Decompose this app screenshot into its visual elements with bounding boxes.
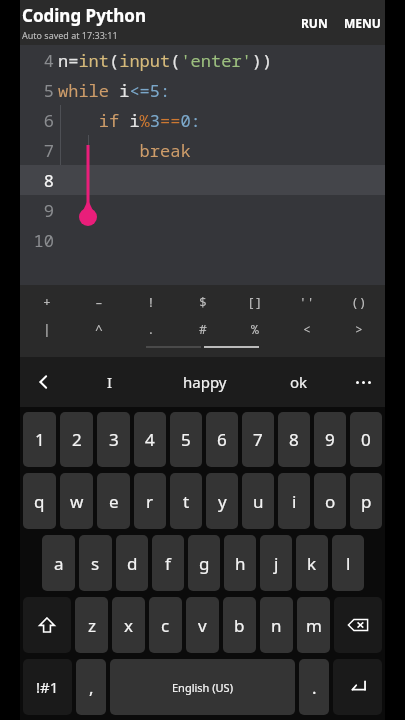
staticText: i (292, 490, 297, 513)
staticText: v (198, 614, 207, 637)
button[interactable]: z (75, 597, 108, 653)
staticText: !#1 (36, 677, 59, 697)
button[interactable]: 2 (60, 412, 93, 467)
button[interactable]: u (242, 473, 274, 529)
button[interactable]: $ (177, 288, 229, 315)
button[interactable]: v (186, 597, 219, 653)
button[interactable]: n (260, 597, 293, 653)
button[interactable]: 6 (20, 105, 385, 135)
staticText: 7 (253, 428, 263, 451)
button[interactable]: MENU (340, 9, 385, 37)
button[interactable]: Back (20, 357, 68, 407)
button[interactable]: 7 (20, 135, 385, 165)
button[interactable]: y (206, 473, 238, 529)
button[interactable]: # (177, 315, 229, 342)
staticText: 9 (20, 199, 54, 222)
button[interactable]: w (60, 473, 93, 529)
button[interactable]: e (97, 473, 130, 529)
button[interactable]: p (350, 473, 382, 529)
button[interactable]: s (79, 535, 112, 591)
staticText: I (107, 372, 113, 392)
button[interactable]: – (73, 288, 125, 315)
button[interactable]: ^ (73, 315, 125, 342)
button[interactable]: English (US) (110, 659, 295, 715)
staticText: 10 (20, 229, 54, 252)
button[interactable]: 9 (20, 195, 385, 225)
button[interactable]: [] (229, 288, 281, 315)
staticText: ! (147, 293, 155, 311)
staticText: h (235, 552, 246, 575)
button[interactable]: Backspace (334, 597, 382, 653)
staticText: y (218, 490, 227, 513)
staticText: English (US) (172, 680, 233, 695)
button[interactable]: '' (281, 288, 333, 315)
staticText: z (88, 614, 96, 637)
staticText: m (306, 614, 322, 637)
button[interactable]: f (152, 535, 184, 591)
button[interactable]: x (112, 597, 145, 653)
button[interactable]: c (149, 597, 182, 653)
button[interactable]: Enter (333, 659, 382, 715)
staticText: t (183, 490, 190, 513)
button[interactable]: o (314, 473, 346, 529)
button[interactable]: 8 (278, 412, 310, 467)
staticText: n=int(input('enter')) (58, 49, 273, 72)
button[interactable]: g (188, 535, 220, 591)
button[interactable]: | (20, 315, 73, 342)
button[interactable]: 3 (97, 412, 130, 467)
button[interactable]: 4 (20, 45, 385, 75)
button[interactable]: () (333, 288, 385, 315)
staticText: g (199, 552, 210, 575)
button[interactable]: k (296, 535, 328, 591)
staticText: o (325, 490, 336, 513)
staticText: RUN (301, 15, 328, 31)
button[interactable]: 4 (134, 412, 166, 467)
staticText: < (303, 320, 311, 338)
button[interactable]: + (20, 288, 73, 315)
button[interactable]: 8 (20, 165, 385, 195)
staticText: > (355, 320, 363, 338)
button[interactable]: Shift (23, 597, 71, 653)
button[interactable]: ! (125, 288, 177, 315)
button[interactable]: 1 (23, 412, 56, 467)
staticText: if i%3==0: (58, 109, 201, 132)
button[interactable]: 9 (314, 412, 346, 467)
button[interactable]: a (42, 535, 75, 591)
button[interactable]: > (333, 315, 385, 342)
button[interactable]: h (224, 535, 256, 591)
button[interactable]: 10 (20, 225, 385, 255)
button[interactable]: q (23, 473, 56, 529)
button[interactable]: < (281, 315, 333, 342)
button[interactable]: 7 (242, 412, 274, 467)
button[interactable]: . (299, 659, 329, 715)
button[interactable]: j (260, 535, 292, 591)
button[interactable]: d (116, 535, 148, 591)
button[interactable]: More options (341, 357, 385, 407)
button[interactable]: r (134, 473, 166, 529)
button[interactable]: . (125, 315, 177, 342)
button[interactable]: b (223, 597, 256, 653)
staticText: 6 (20, 109, 54, 132)
button[interactable]: i (278, 473, 310, 529)
staticText: | (43, 320, 51, 338)
button[interactable]: 6 (206, 412, 238, 467)
button[interactable]: happy (152, 357, 257, 407)
button[interactable]: % (229, 315, 281, 342)
staticText: ^ (95, 320, 103, 338)
button[interactable]: ok (257, 357, 341, 407)
button[interactable]: , (76, 659, 106, 715)
staticText: b (234, 614, 245, 637)
staticText: w (70, 490, 84, 513)
button[interactable]: !#1 (23, 659, 72, 715)
button[interactable]: 0 (350, 412, 382, 467)
staticText: n (271, 614, 282, 637)
button[interactable]: I (68, 357, 152, 407)
staticText: 6 (217, 428, 227, 451)
button[interactable]: 5 (20, 75, 385, 105)
button[interactable]: m (297, 597, 330, 653)
button[interactable]: t (170, 473, 202, 529)
button[interactable]: RUN (295, 9, 334, 37)
button[interactable]: l (332, 535, 364, 591)
staticText: # (199, 320, 207, 338)
button[interactable]: 5 (170, 412, 202, 467)
